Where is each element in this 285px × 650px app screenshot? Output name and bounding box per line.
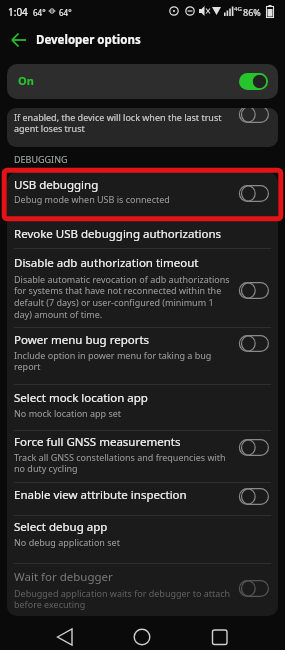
button[interactable]: Select mock location app [7,384,278,430]
staticText: Enable view attribute inspection [14,487,187,503]
button[interactable]: USB debugging [7,172,278,220]
staticText: Disable adb authorization timeout [14,255,199,271]
staticText: On [18,73,34,88]
staticText: Wait for debugger [14,569,113,585]
staticText: Developer options [36,32,141,48]
staticText: Force full GNSS measurements [14,434,181,450]
staticText: Power menu bug reports [14,332,150,348]
button[interactable] [122,622,162,650]
button[interactable] [200,622,240,650]
button[interactable]: If enabled, the device will lock when th… [7,108,278,147]
button[interactable] [0,22,285,57]
button[interactable]: On [7,64,278,99]
button[interactable]: Force full GNSS measurements [7,430,278,482]
staticText: Debug mode when USB is connected [14,193,170,205]
staticText: If enabled, the device will lock when th… [14,111,222,135]
staticText: Revoke USB debugging authorizations [14,226,222,242]
button[interactable] [45,622,85,650]
button[interactable]: Disable adb authorization timeout [7,248,278,327]
staticText: 64° [33,7,46,18]
staticText: Select debug app [14,519,108,535]
staticText: Include option in power menu for taking … [14,349,212,373]
staticText: Disable automatic revocation of adb auth… [14,273,230,321]
button[interactable]: Select debug app [7,515,278,563]
staticText: Select mock location app [14,390,148,406]
button[interactable]: Wait for debugger [7,563,278,616]
staticText: No mock location app set [14,407,122,419]
button[interactable] [11,32,27,48]
staticText: 86% [243,6,261,18]
button[interactable]: Revoke USB debugging authorizations [7,220,278,248]
staticText: Track all GNSS constellations and freque… [14,451,226,475]
staticText: 1:04 [8,5,28,19]
staticText: DEBUGGING [14,153,68,165]
staticText: USB debugging [14,177,99,193]
staticText: Debugged application waits for debugger … [14,587,231,611]
button[interactable]: Enable view attribute inspection [7,482,278,515]
staticText: No debug application set [14,536,120,548]
staticText: 64° [59,7,72,18]
staticText: 4G [234,5,242,13]
button[interactable]: Power menu bug reports [7,327,278,384]
